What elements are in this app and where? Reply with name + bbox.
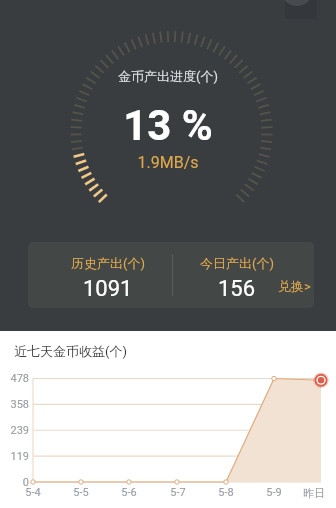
staticText: 历史产出(个) xyxy=(71,255,145,271)
button[interactable]: More xyxy=(281,0,313,6)
staticText: 5-7 xyxy=(160,486,196,499)
staticText: 5-8 xyxy=(208,486,244,499)
staticText: 近七天金币收益(个) xyxy=(14,343,127,359)
staticText: 5-9 xyxy=(256,486,292,499)
staticText: 156 xyxy=(218,276,256,302)
staticText: 金币产出进度(个) xyxy=(0,68,336,84)
staticText: 119 xyxy=(2,450,29,463)
staticText: 5-6 xyxy=(111,486,147,499)
staticText: 5-4 xyxy=(15,486,51,499)
staticText: 兑换> xyxy=(278,278,311,294)
staticText: 358 xyxy=(2,398,29,411)
staticText: 1.9MB/s xyxy=(0,153,336,172)
staticText: 5-5 xyxy=(63,486,99,499)
staticText: 1091 xyxy=(83,276,133,302)
staticText: 13 % xyxy=(0,101,336,150)
button[interactable]: 今日产出(个) xyxy=(178,245,295,308)
staticText: 239 xyxy=(2,424,29,437)
button[interactable]: 历史产出(个) xyxy=(40,245,176,308)
staticText: 昨日 xyxy=(296,486,332,500)
staticText: 今日产出(个) xyxy=(200,255,274,271)
staticText: 0 xyxy=(2,476,29,489)
staticText: 478 xyxy=(2,372,29,385)
button[interactable]: 兑换> xyxy=(278,278,314,294)
